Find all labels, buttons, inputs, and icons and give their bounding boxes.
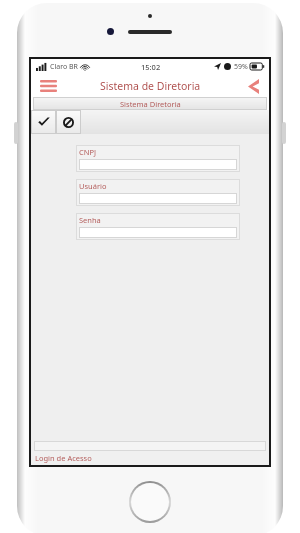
staticText: Usuário <box>79 181 107 191</box>
button[interactable]: Confirm <box>31 110 56 134</box>
staticText: 59% <box>234 62 248 72</box>
button[interactable]: Cancel <box>56 110 81 134</box>
staticText: Login de Acesso <box>35 453 92 463</box>
button[interactable]: Senha <box>79 215 237 238</box>
button[interactable]: Back <box>242 76 264 96</box>
staticText: Sistema Diretoria <box>120 99 181 109</box>
staticText: Claro BR <box>50 62 78 72</box>
staticText: CNPJ <box>79 147 97 157</box>
staticText: 15:02 <box>141 62 161 72</box>
staticText: Sistema de Diretoria <box>100 79 201 93</box>
staticText: Senha <box>79 215 101 225</box>
button[interactable]: Menu <box>37 77 59 95</box>
button[interactable]: Usuário <box>79 181 237 204</box>
button[interactable]: CNPJ <box>79 147 237 170</box>
other: Home <box>131 483 169 521</box>
